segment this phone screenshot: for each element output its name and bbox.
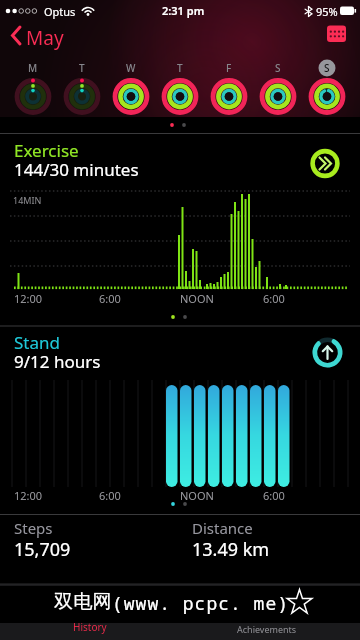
staticText: 6:00: [263, 488, 285, 503]
staticText: W: [126, 61, 136, 75]
button[interactable]: [8, 22, 68, 50]
staticText: 9/12 hours: [14, 350, 101, 373]
staticText: S: [324, 61, 330, 75]
button[interactable]: [303, 58, 351, 114]
button[interactable]: [320, 20, 354, 50]
staticText: Stand: [14, 331, 60, 354]
staticText: Achievements: [237, 623, 297, 635]
button[interactable]: [107, 58, 155, 114]
button[interactable]: [10, 137, 190, 181]
staticText: 6:00: [99, 488, 121, 503]
staticText: 14MIN: [13, 194, 42, 206]
staticText: History: [73, 620, 107, 634]
staticText: May: [26, 25, 64, 51]
staticText: Exercise: [14, 139, 79, 162]
staticText: 15,709: [14, 537, 71, 562]
staticText: 双电网: [54, 590, 112, 614]
button[interactable]: [10, 328, 190, 372]
staticText: M: [28, 61, 38, 75]
button[interactable]: [205, 58, 253, 114]
staticText: 2:31 pm: [162, 3, 205, 18]
button[interactable]: [58, 58, 106, 114]
staticText: NOON: [180, 488, 214, 503]
staticText: T: [177, 61, 183, 75]
staticText: 12:00: [14, 291, 43, 306]
button[interactable]: [178, 516, 360, 576]
button[interactable]: [306, 145, 346, 185]
staticText: Optus: [44, 4, 76, 19]
staticText: F: [226, 61, 232, 75]
staticText: 13.49 km: [192, 537, 270, 562]
staticText: Distance: [192, 518, 253, 538]
button[interactable]: [0, 516, 178, 576]
staticText: NOON: [180, 291, 214, 306]
staticText: 6:00: [99, 291, 121, 306]
staticText: 144/30 minutes: [14, 158, 139, 181]
button[interactable]: [156, 58, 204, 114]
staticText: S: [275, 61, 281, 75]
button[interactable]: [9, 58, 57, 114]
staticText: Steps: [14, 518, 53, 538]
button[interactable]: [0, 585, 180, 640]
button[interactable]: [311, 334, 351, 374]
staticText: 6:00: [263, 291, 285, 306]
staticText: (www. pcpc. me): [112, 591, 289, 616]
staticText: 12:00: [14, 488, 43, 503]
button[interactable]: [180, 585, 360, 640]
button[interactable]: [254, 58, 302, 114]
staticText: T: [79, 61, 85, 75]
staticText: 95%: [316, 4, 338, 19]
